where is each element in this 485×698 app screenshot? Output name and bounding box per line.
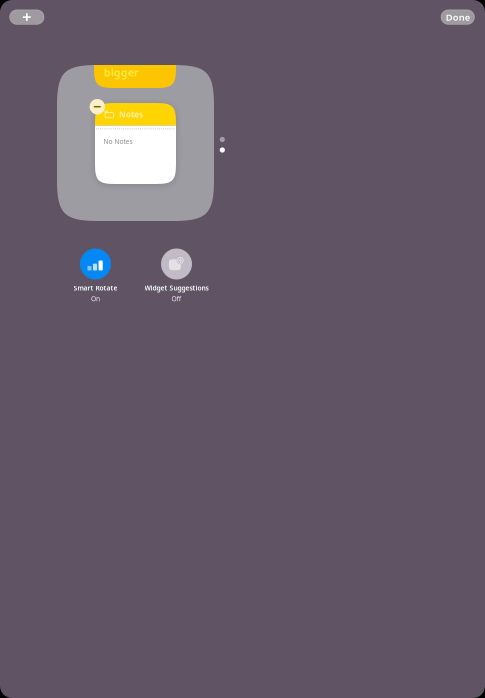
- staticText: Off: [171, 294, 181, 303]
- button[interactable]: Done: [441, 10, 474, 24]
- staticText: Done: [446, 11, 470, 23]
- button[interactable]: Smart Rotate: [73, 248, 117, 303]
- button[interactable]: Add widget: [10, 10, 44, 24]
- button[interactable]: Remove Notes widget: [90, 99, 105, 114]
- button[interactable]: Widget Suggestions: [144, 248, 208, 303]
- staticText: Smart Rotate: [73, 283, 117, 292]
- staticText: Notes: [119, 109, 143, 120]
- staticText: No Notes: [103, 137, 132, 146]
- staticText: On: [91, 294, 100, 303]
- staticText: Widget Suggestions: [144, 283, 208, 292]
- staticText: bigger: [104, 65, 139, 79]
